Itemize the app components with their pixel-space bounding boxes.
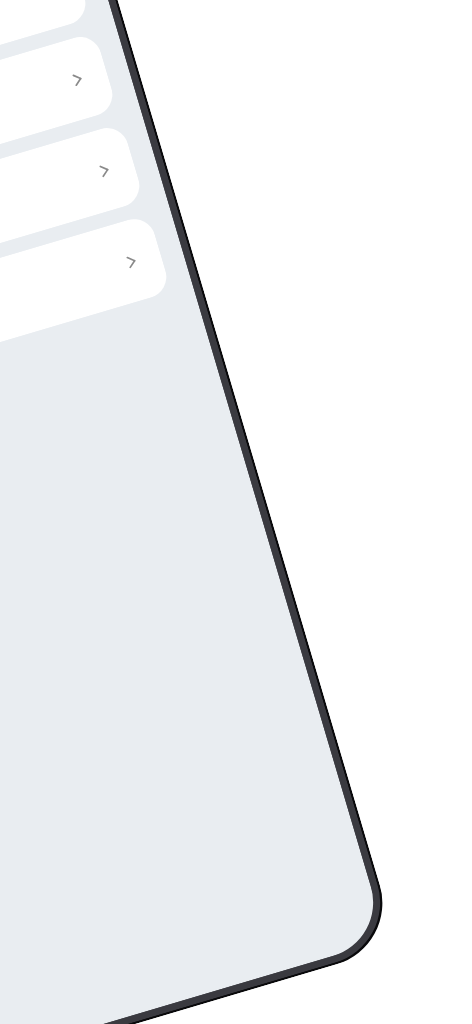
button[interactable]: Help & support: [0, 214, 172, 473]
button[interactable]: Appearance: [0, 123, 145, 382]
button[interactable]: Account: [0, 0, 64, 108]
button[interactable]: Privacy & security: [0, 32, 118, 290]
button[interactable]: Notifications: [0, 0, 91, 199]
